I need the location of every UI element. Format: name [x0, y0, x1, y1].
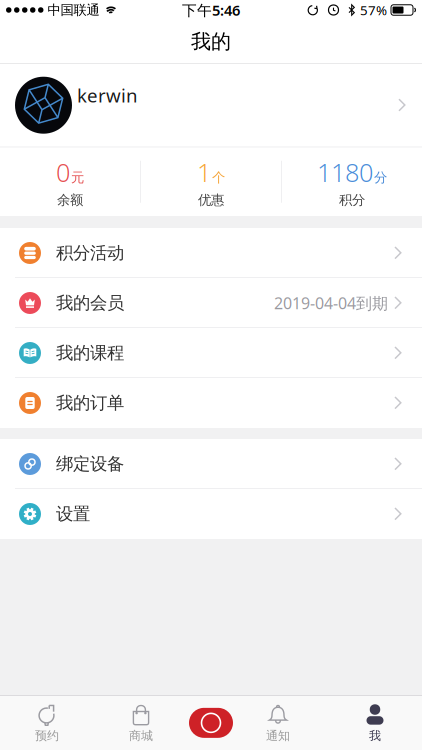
staticText: 我的会员	[56, 292, 124, 314]
button[interactable]: 0	[0, 155, 140, 208]
staticText: 余额	[57, 192, 83, 208]
staticText: 我	[369, 728, 381, 743]
button[interactable]: 我	[345, 702, 405, 743]
staticText: 下午5:46	[182, 0, 240, 20]
button[interactable]: 绑定设备	[0, 439, 422, 489]
button[interactable]: 预约	[17, 702, 77, 743]
button[interactable]: 商城	[111, 702, 171, 743]
staticText: 2019-04-04到期	[274, 292, 388, 314]
staticText: 积分	[339, 192, 365, 208]
staticText: 商城	[129, 728, 153, 743]
staticText: kerwin	[77, 83, 138, 108]
button[interactable]: kerwin	[0, 64, 422, 147]
staticText: 我的订单	[56, 392, 124, 414]
button[interactable]: 积分活动	[0, 228, 422, 278]
button[interactable]: 通知	[248, 702, 308, 743]
button[interactable]: 我的订单	[0, 378, 422, 428]
staticText: 元	[71, 169, 84, 186]
staticText: 0	[56, 155, 70, 189]
staticText: 优惠	[198, 192, 224, 208]
staticText: 绑定设备	[56, 453, 124, 475]
staticText: 中国联通	[47, 2, 99, 18]
staticText: 个	[212, 169, 225, 186]
staticText: 通知	[266, 728, 290, 743]
staticText: 57%	[360, 1, 387, 19]
button[interactable]: 设置	[0, 489, 422, 539]
staticText: 1	[197, 155, 211, 189]
staticText: 1180	[317, 155, 373, 189]
button[interactable]: 我的课程	[0, 328, 422, 378]
button[interactable]	[181, 701, 241, 745]
staticText: 预约	[35, 728, 59, 743]
staticText: 设置	[56, 503, 90, 525]
staticText: 我的课程	[56, 342, 124, 364]
staticText: 积分活动	[56, 242, 124, 264]
staticText: 分	[374, 169, 387, 186]
button[interactable]: 1	[141, 155, 281, 208]
button[interactable]: 1180	[282, 155, 422, 208]
staticText: 我的	[191, 29, 231, 54]
button[interactable]: 我的会员	[0, 278, 422, 328]
